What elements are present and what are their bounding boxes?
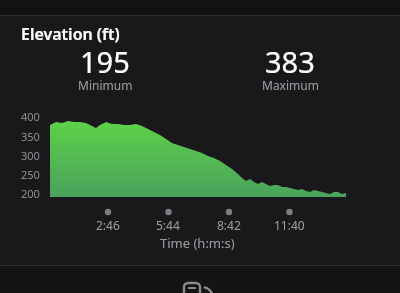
staticText: 5:44: [156, 217, 180, 233]
staticText: 200: [21, 186, 40, 201]
staticText: 250: [21, 167, 40, 182]
staticText: 195: [80, 42, 130, 81]
staticText: Maximum: [262, 77, 319, 93]
staticText: 383: [265, 42, 315, 81]
staticText: Elevation (ft): [21, 23, 120, 45]
button[interactable]: 383: [220, 42, 360, 81]
staticText: 8:42: [217, 217, 241, 233]
staticText: 350: [21, 129, 40, 144]
staticText: 11:40: [274, 217, 305, 233]
staticText: Minimum: [78, 77, 133, 93]
staticText: 300: [21, 148, 40, 163]
staticText: Time (h:m:s): [160, 234, 235, 252]
staticText: 2:46: [96, 217, 120, 233]
button[interactable]: 195: [35, 42, 175, 81]
staticText: 400: [21, 109, 40, 124]
